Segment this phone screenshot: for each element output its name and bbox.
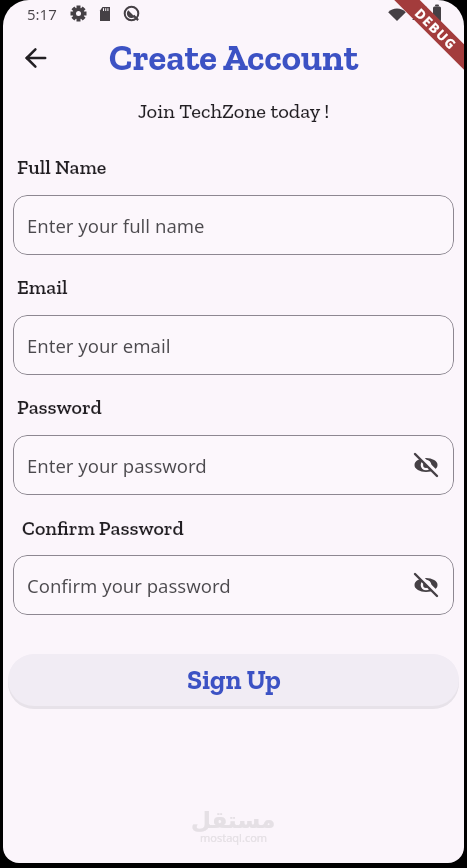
staticText: Email: [17, 275, 68, 299]
button[interactable]: Enter your full name: [13, 195, 454, 255]
button[interactable]: [25, 46, 49, 70]
staticText: Confirm your password: [27, 573, 412, 598]
staticText: Password: [17, 395, 102, 419]
staticText: 5:17: [27, 4, 57, 24]
staticText: Create Account: [109, 36, 359, 80]
staticText: Sign Up: [187, 664, 281, 696]
button[interactable]: [412, 451, 440, 479]
staticText: Enter your password: [27, 453, 412, 478]
button[interactable]: Confirm your password: [13, 555, 454, 615]
button[interactable]: Enter your password: [13, 435, 454, 495]
staticText: DEBUG: [411, 4, 461, 54]
staticText: Full Name: [17, 155, 107, 179]
button[interactable]: Enter your email: [13, 315, 454, 375]
staticText: Join TechZone today !: [3, 99, 464, 124]
staticText: Confirm Password: [22, 516, 184, 540]
button[interactable]: [412, 571, 440, 599]
staticText: مستقل: [191, 807, 276, 834]
button[interactable]: Sign Up: [8, 654, 459, 706]
staticText: Enter your email: [27, 333, 454, 358]
staticText: Enter your full name: [27, 213, 454, 238]
staticText: mostaql.com: [200, 830, 268, 845]
